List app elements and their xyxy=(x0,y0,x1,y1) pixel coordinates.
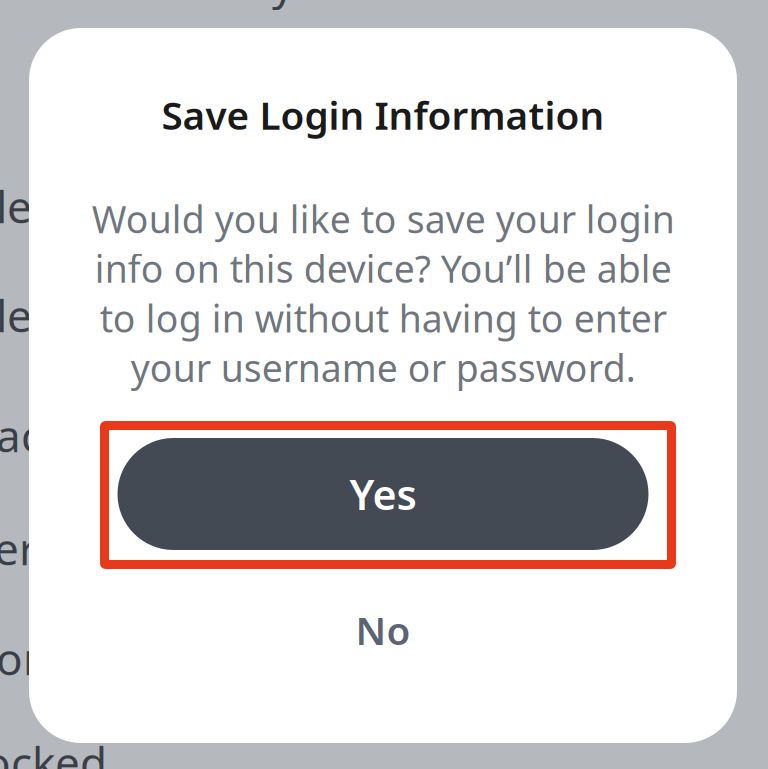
staticText: Save Login Information xyxy=(161,89,604,140)
staticText: ac xyxy=(0,406,42,464)
staticText: lea xyxy=(0,286,57,344)
staticText: Would you like to save your login info o… xyxy=(91,194,674,392)
staticText: y xyxy=(272,0,294,11)
staticText: or xyxy=(0,629,41,687)
button[interactable]: No xyxy=(253,593,513,667)
staticText: Yes xyxy=(349,467,416,521)
staticText: No xyxy=(355,604,410,656)
button[interactable]: Yes xyxy=(117,438,648,550)
staticText: lea xyxy=(0,177,57,235)
staticText: ern xyxy=(0,519,64,577)
staticText: ocked xyxy=(0,733,107,769)
